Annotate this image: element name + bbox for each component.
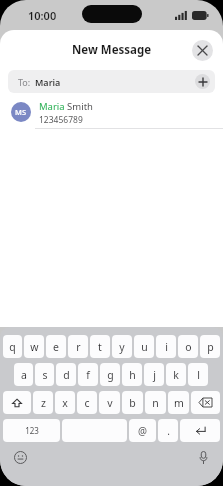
staticText: m [174,396,184,410]
staticText: g [107,368,114,382]
staticText: z [41,396,46,410]
staticText: y [119,340,125,354]
button[interactable]: Shift [3,391,31,414]
button[interactable]: m [168,391,189,414]
staticText: e [53,340,59,354]
staticText: k [173,368,179,382]
staticText: To: [18,76,31,88]
button[interactable]: x [55,391,75,414]
button[interactable]: q [3,335,22,358]
staticText: i [165,340,168,354]
staticText: u [141,340,148,354]
staticText: d [63,368,70,382]
staticText: . [167,424,170,438]
button[interactable]: f [78,363,98,386]
button[interactable]: g [100,363,120,386]
button[interactable]: Return [180,419,220,442]
staticText: p [207,340,214,354]
staticText: b [129,396,136,410]
staticText: Maria [35,76,61,88]
button[interactable]: Close [192,40,213,61]
staticText: s [42,368,48,382]
button[interactable]: y [112,335,132,358]
staticText: o [185,340,192,354]
button[interactable]: j [144,363,164,386]
button[interactable]: r [68,335,88,358]
staticText: q [9,340,16,354]
button[interactable]: e [46,335,66,358]
staticText: n [152,396,159,410]
button[interactable]: i [156,335,176,358]
button[interactable]: h [122,363,142,386]
button[interactable]: 123 [3,419,60,442]
staticText: v [107,396,113,410]
staticText: 123456789 [39,114,83,124]
staticText: c [84,396,90,410]
button[interactable]: To: [8,70,215,93]
staticText: Maria Smith [39,100,93,113]
staticText: 123 [25,425,39,436]
staticText: r [76,340,81,354]
button[interactable]: c [77,391,97,414]
staticText: l [197,368,200,382]
staticText: MS [15,107,27,117]
staticText: f [86,368,90,382]
staticText: x [62,396,68,410]
button[interactable]: Space [62,419,127,442]
button[interactable]: s [35,363,54,386]
staticText: h [129,368,136,382]
button[interactable]: z [33,391,53,414]
button[interactable]: Add contact [195,74,210,89]
button[interactable]: l [188,363,208,386]
button[interactable]: Emoji [12,449,28,465]
button[interactable]: n [145,391,166,414]
staticText: @ [138,424,147,438]
button[interactable]: MS [0,100,223,129]
button[interactable]: o [178,335,198,358]
button[interactable]: @ [129,419,156,442]
staticText: New Message [72,42,152,58]
button[interactable]: u [134,335,154,358]
staticText: t [98,340,102,354]
button[interactable]: Backspace [191,391,220,414]
button[interactable]: a [14,363,33,386]
staticText: w [30,340,39,354]
staticText: j [153,368,156,382]
button[interactable]: t [90,335,110,358]
staticText: a [21,368,27,382]
button[interactable]: p [200,335,220,358]
button[interactable]: . [158,419,178,442]
button[interactable]: Dictation [195,449,211,465]
staticText: 10:00 [28,8,57,23]
button[interactable]: b [122,391,143,414]
button[interactable]: w [24,335,44,358]
button[interactable]: k [166,363,186,386]
button[interactable]: d [56,363,76,386]
button[interactable]: v [99,391,120,414]
